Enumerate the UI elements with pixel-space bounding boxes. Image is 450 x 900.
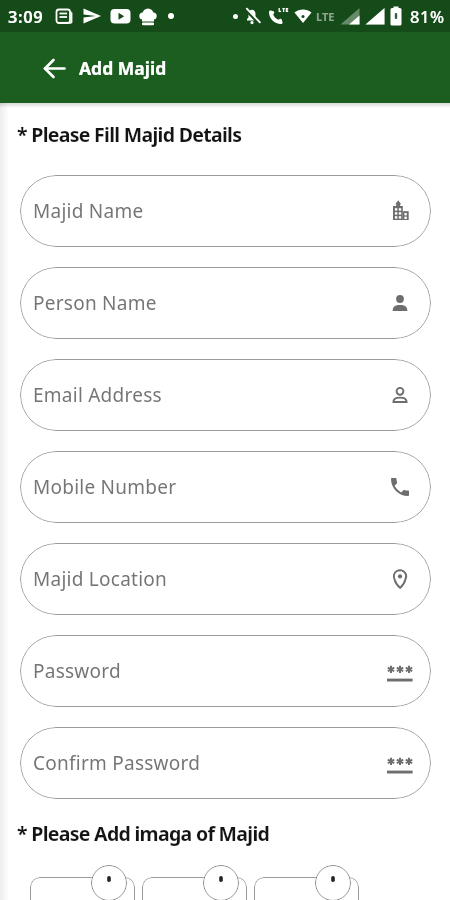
button[interactable]: Person Name xyxy=(20,267,431,339)
staticText: Email Address xyxy=(33,382,162,408)
staticText: Person Name xyxy=(33,290,157,316)
staticText: Password xyxy=(33,658,121,684)
button[interactable]: Confirm Password xyxy=(20,727,431,799)
staticText: LTE xyxy=(316,9,335,24)
button[interactable]: Password xyxy=(20,635,431,707)
staticText: Majid Name xyxy=(33,198,144,224)
button[interactable] xyxy=(142,865,248,900)
staticText: 3:09 xyxy=(8,5,44,27)
button[interactable]: Mobile Number xyxy=(20,451,431,523)
button[interactable] xyxy=(30,865,136,900)
staticText: * Please Add imaga of Majid xyxy=(17,820,270,847)
button[interactable] xyxy=(36,50,72,86)
staticText: Mobile Number xyxy=(33,474,177,500)
button[interactable]: Majid Name xyxy=(20,175,431,247)
button[interactable]: Majid Location xyxy=(20,543,431,615)
staticText: Confirm Password xyxy=(33,750,201,776)
button[interactable] xyxy=(254,865,360,900)
staticText: Add Majid xyxy=(79,56,167,80)
staticText: 81% xyxy=(410,5,445,27)
staticText: Majid Location xyxy=(33,566,168,592)
button[interactable]: Email Address xyxy=(20,359,431,431)
staticText: * Please Fill Majid Details xyxy=(17,121,242,148)
